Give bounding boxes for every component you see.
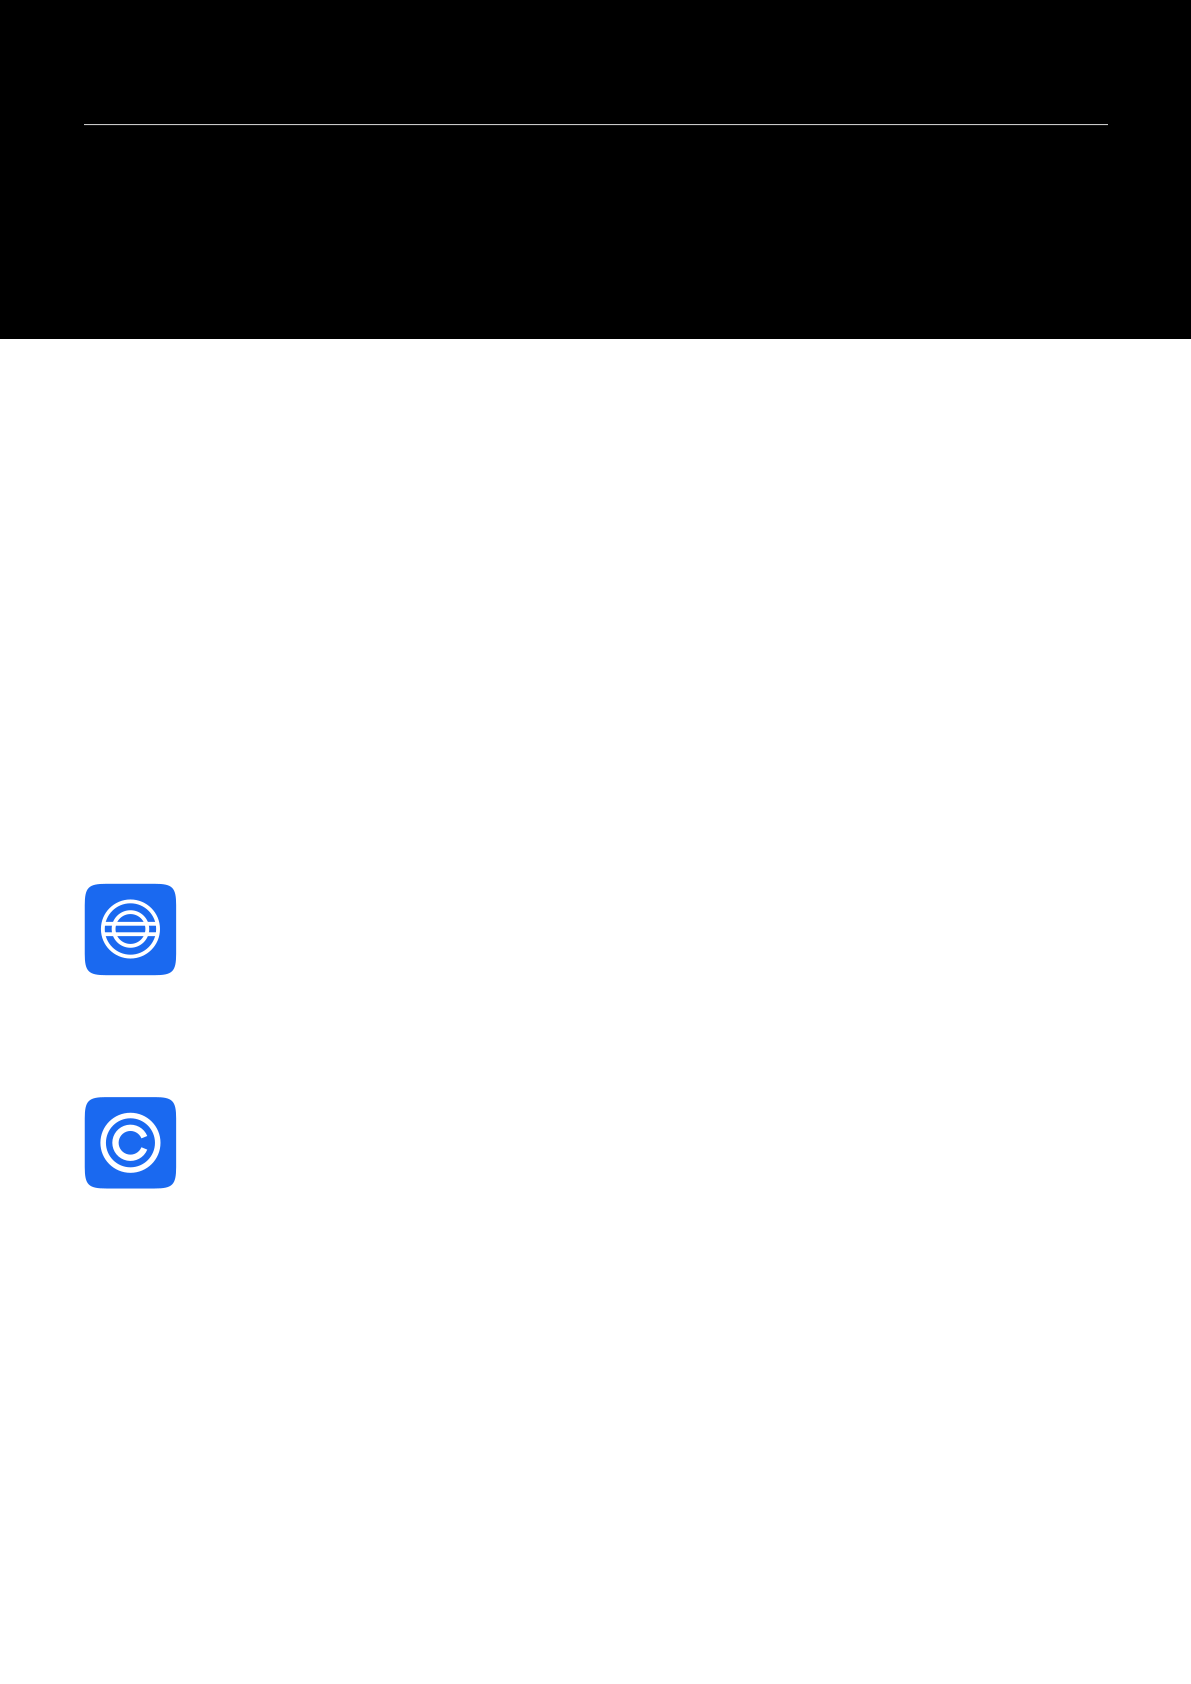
button[interactable]: Language & Region [85,884,1106,975]
button[interactable]: Legal & Regulatory [85,1097,1106,1188]
